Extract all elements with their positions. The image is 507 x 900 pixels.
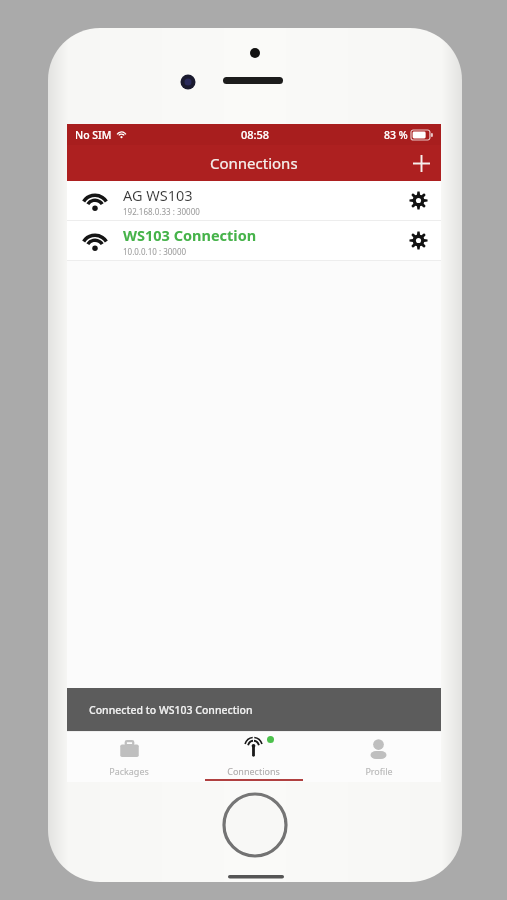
button[interactable]: Connected to WS103 Connection	[67, 688, 441, 731]
staticText: No SIM	[75, 128, 112, 142]
button[interactable]: Settings for WS103 Connection	[395, 221, 441, 260]
staticText: Connections	[210, 153, 298, 173]
staticText: AG WS103	[123, 185, 193, 205]
staticText: 83 %	[384, 128, 408, 142]
button[interactable]: AG WS103	[67, 181, 441, 220]
staticText: 192.168.0.33 : 30000	[123, 206, 200, 217]
button[interactable]: Packages	[67, 731, 191, 782]
staticText: Packages	[109, 765, 149, 777]
button[interactable]: Add connection	[401, 145, 441, 181]
button[interactable]: Settings for AG WS103	[395, 181, 441, 220]
staticText: Connections	[227, 765, 280, 777]
staticText: 10.0.0.10 : 30000	[123, 246, 187, 257]
staticText: WS103 Connection	[123, 225, 257, 245]
staticText: 08:58	[241, 127, 270, 142]
staticText: Connected to WS103 Connection	[89, 703, 253, 717]
staticText: Profile	[365, 765, 393, 777]
button[interactable]: Connections	[191, 731, 316, 782]
button[interactable]: WS103 Connection	[67, 221, 441, 260]
button[interactable]: Profile	[316, 731, 441, 782]
